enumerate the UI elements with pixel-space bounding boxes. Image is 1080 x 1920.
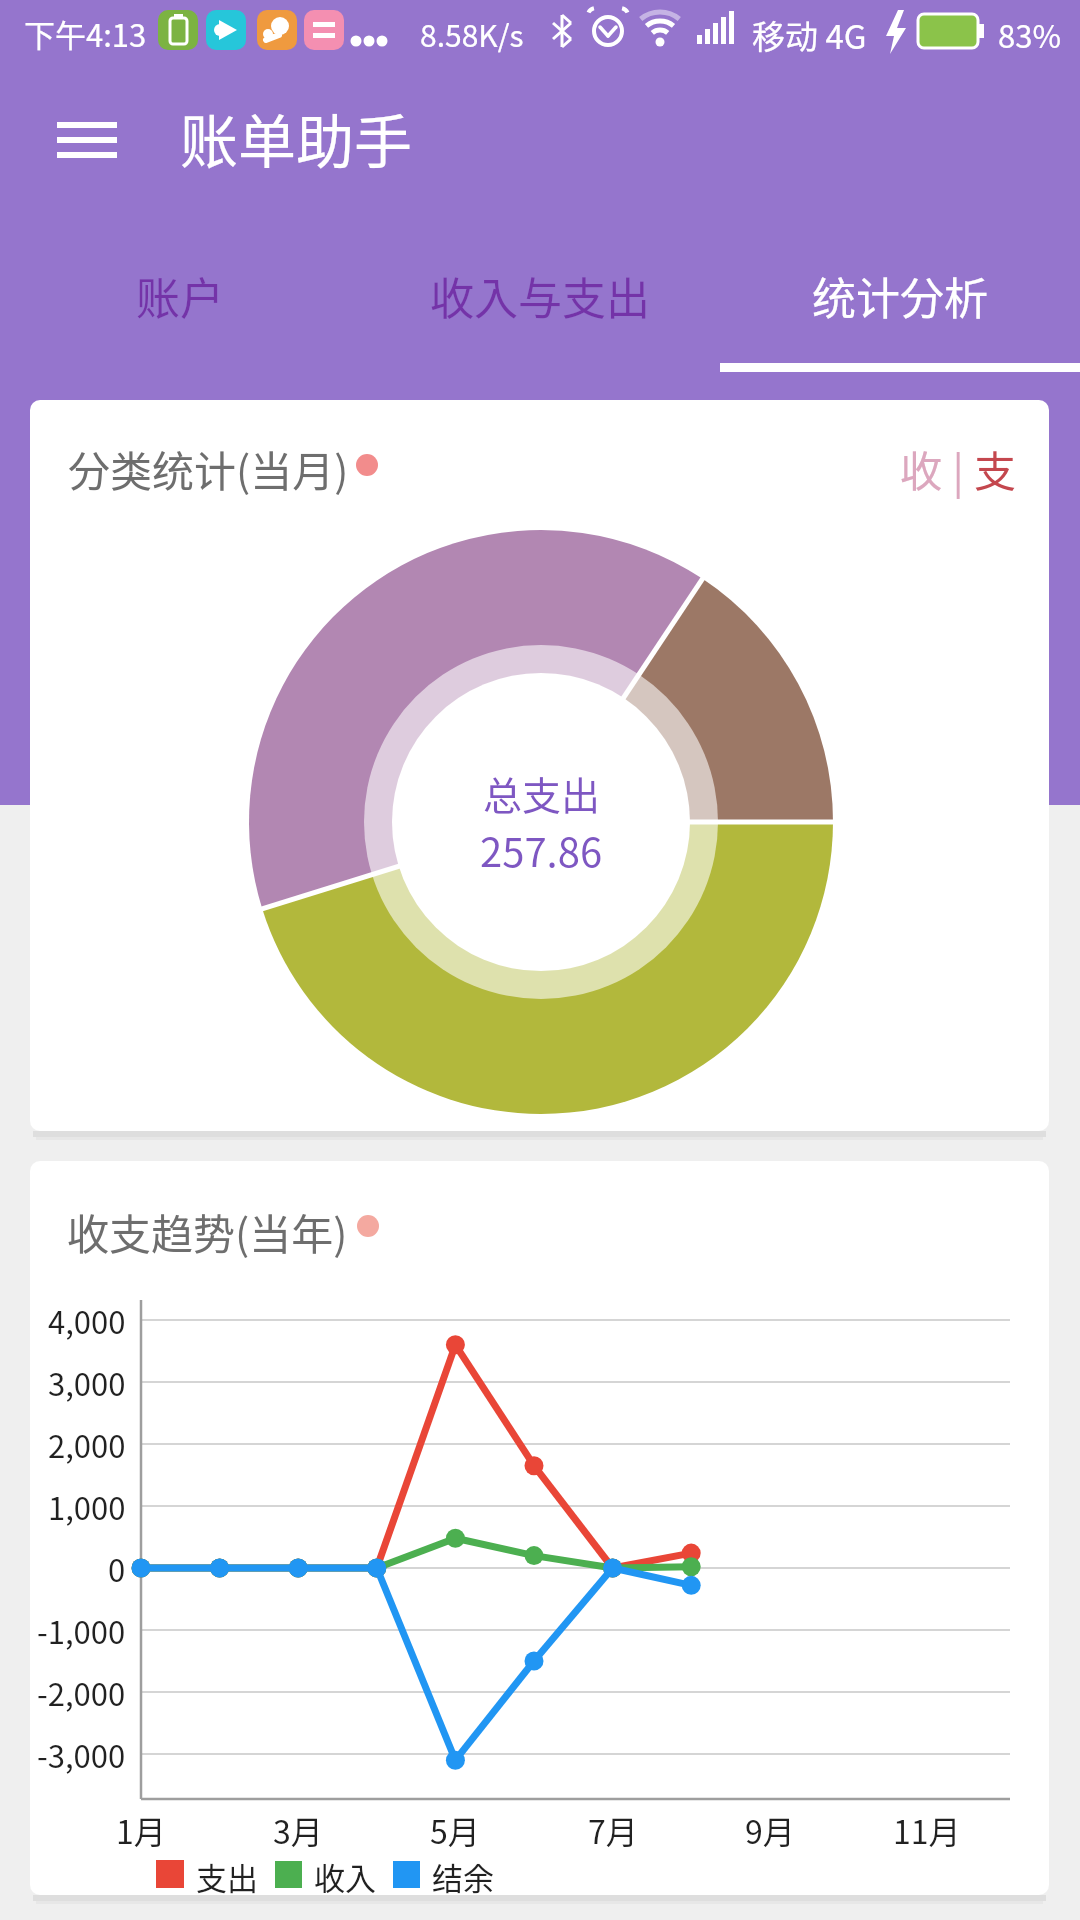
staticText: 1,000 [48,1484,126,1529]
staticText: | [943,438,974,499]
button[interactable] [40,106,135,176]
staticText: 移动 4G [752,11,867,59]
button[interactable]: 账户 [0,224,360,368]
staticText: 分类统计(当月) [68,438,349,499]
staticText: 支出 [196,1854,258,1894]
staticText: 1月 [116,1807,166,1851]
staticText: 总支出 [483,765,601,821]
staticText: 4,000 [48,1298,126,1343]
staticText: 83% [998,12,1061,57]
staticText: 3,000 [48,1360,126,1405]
button[interactable]: 收入与支出 [360,224,720,368]
staticText: 5月 [430,1807,480,1851]
button[interactable]: 收 [900,438,1017,499]
staticText: -3,000 [37,1732,126,1777]
staticText: 收 [900,438,943,499]
staticText: 结余 [432,1854,494,1894]
staticText: 下午4:13 [24,11,147,56]
staticText: 9月 [745,1807,795,1851]
staticText: 账户 [136,264,224,328]
staticText: 支 [974,438,1017,499]
staticText: 7月 [588,1807,638,1851]
staticText: 账单助手 [180,96,413,180]
staticText: 8.58K/s [420,12,524,55]
staticText: 收入 [314,1854,376,1894]
staticText: 3月 [273,1807,323,1851]
staticText: 收支趋势(当年) [67,1201,348,1262]
button[interactable]: 统计分析 [720,224,1080,368]
staticText: -2,000 [37,1670,126,1715]
staticText: 0 [108,1546,126,1591]
staticText: 2,000 [48,1422,126,1467]
staticText: 11月 [893,1807,961,1851]
staticText: 统计分析 [812,264,988,328]
staticText: -1,000 [37,1608,126,1653]
staticText: 257.86 [480,821,603,879]
staticText: 收入与支出 [430,264,650,328]
